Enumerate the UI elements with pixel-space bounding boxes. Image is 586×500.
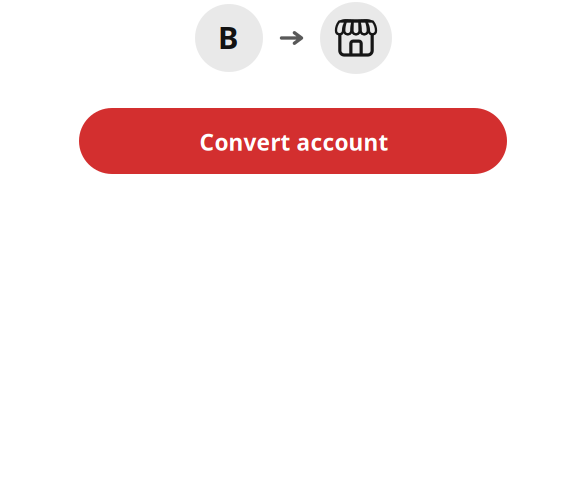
staticText: B xyxy=(218,17,238,57)
button[interactable]: Convert account xyxy=(79,108,507,174)
staticText: Convert account xyxy=(199,127,388,157)
